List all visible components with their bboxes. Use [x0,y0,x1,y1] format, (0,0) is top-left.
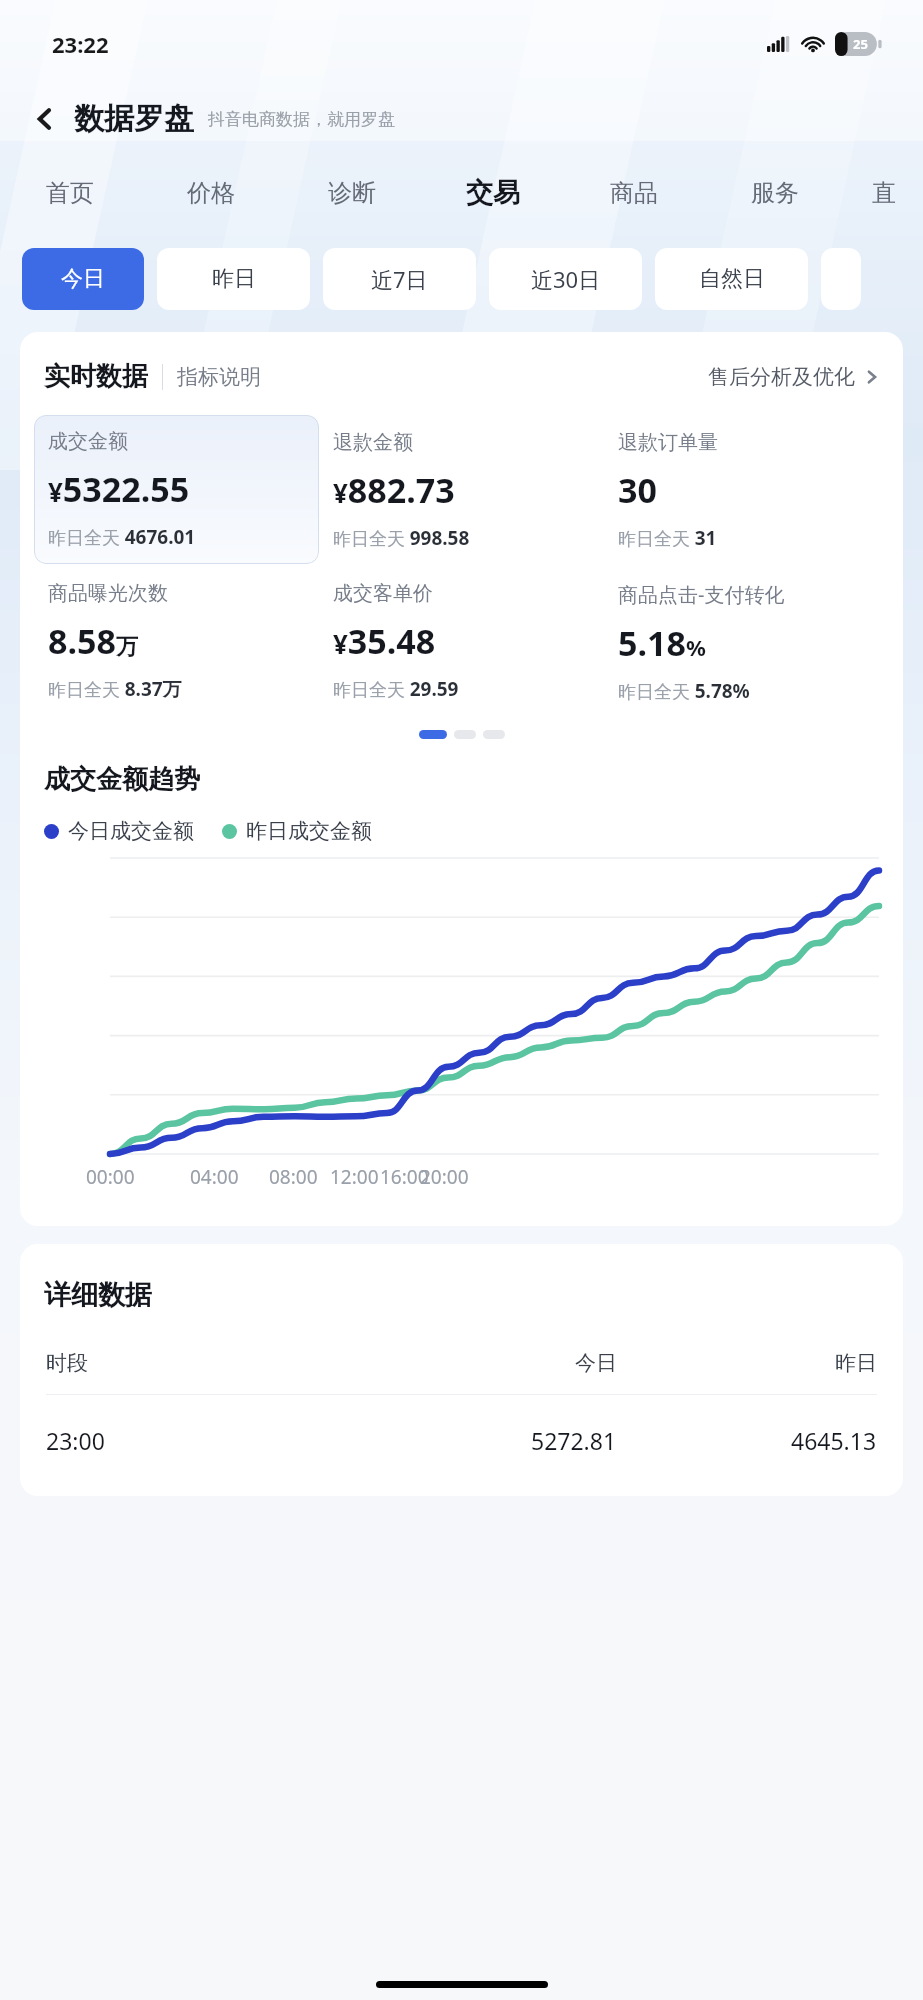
staticText: 指标说明 [177,364,261,390]
staticText: 23:22 [52,29,109,59]
button[interactable]: Back [22,96,68,142]
button[interactable]: 近7日 [323,248,476,310]
staticText: 5272.81 [531,1425,617,1456]
button[interactable]: 指标说明 [177,364,261,390]
staticText: 商品点击-支付转化 [618,581,785,608]
button[interactable]: 服务 [704,160,845,226]
staticText: 直 [872,178,896,208]
staticText: 近30日 [531,264,601,294]
button[interactable]: 今日 [22,248,144,310]
staticText: 成交金额趋势 [44,763,200,796]
staticText: 详细数据 [44,1278,152,1312]
staticText: 4645.13 [791,1425,877,1456]
staticText: 昨日全天 29.59 [333,676,459,702]
button[interactable]: 交易 [422,160,563,226]
staticText: 8.58万 [48,618,138,664]
button[interactable]: 退款金额 [319,415,604,565]
staticText: 20:00 [420,1164,469,1190]
staticText: 12:00 [330,1164,379,1190]
staticText: 昨日 [835,1350,877,1376]
staticText: 数据罗盘 [74,100,194,138]
staticText: 08:00 [269,1164,318,1190]
button[interactable]: 退款订单量 [604,415,889,565]
button[interactable]: 商品 [563,160,704,226]
staticText: ¥5322.55 [48,466,190,512]
staticText: 今日成交金额 [68,818,194,844]
staticText: 近7日 [371,264,428,294]
button[interactable]: 售后分析及优化 [708,364,879,390]
staticText: 自然日 [699,265,765,293]
staticText: 16:00 [380,1164,429,1190]
button[interactable]: 首页 [0,160,140,226]
staticText: 成交客单价 [333,581,433,606]
staticText: 商品 [610,178,658,208]
staticText: 价格 [187,178,235,208]
staticText: 退款金额 [333,430,413,455]
button[interactable]: 成交客单价 [319,581,604,702]
staticText: 商品曝光次数 [48,581,168,606]
staticText: ¥35.48 [333,618,436,664]
staticText: 售后分析及优化 [708,364,855,390]
staticText: 昨日全天 8.37万 [48,676,182,702]
staticText: 昨日全天 4676.01 [48,524,196,550]
staticText: 实时数据 [44,360,148,393]
staticText: 时段 [46,1350,305,1376]
button[interactable]: 商品曝光次数 [34,581,319,702]
button[interactable]: 直 [845,160,923,226]
staticText: 退款订单量 [618,430,718,455]
staticText: 服务 [751,178,799,208]
button[interactable]: 昨日 [157,248,310,310]
button[interactable]: 自然日 [655,248,808,310]
staticText: 昨日 [212,265,256,293]
button[interactable]: 成交金额 [34,415,319,564]
button[interactable] [821,248,861,310]
button[interactable]: 价格 [140,160,281,226]
button[interactable]: 诊断 [281,160,422,226]
staticText: 交易 [466,176,520,210]
staticText: 04:00 [190,1164,239,1190]
staticText: 23:00 [46,1425,305,1456]
staticText: 00:00 [86,1164,135,1190]
staticText: 25 [853,35,868,53]
staticText: ¥882.73 [333,467,455,513]
staticText: 30 [618,467,657,513]
staticText: 诊断 [328,178,376,208]
staticText: 昨日全天 31 [618,525,717,551]
staticText: 首页 [46,178,94,208]
button[interactable]: 近30日 [489,248,642,310]
staticText: 今日 [575,1350,617,1376]
staticText: 5.18% [618,620,706,666]
staticText: 昨日全天 5.78% [618,678,750,704]
staticText: 抖音电商数据，就用罗盘 [208,109,395,130]
staticText: 昨日全天 998.58 [333,525,470,551]
button[interactable]: 商品点击-支付转化 [604,581,889,704]
staticText: 成交金额 [48,429,128,454]
staticText: 今日 [61,265,105,293]
staticText: 昨日成交金额 [246,818,372,844]
